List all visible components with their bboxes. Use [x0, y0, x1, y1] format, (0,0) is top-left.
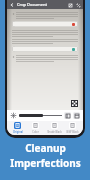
button[interactable]: B/W Black	[64, 122, 81, 134]
button[interactable]: Back	[9, 2, 15, 8]
staticText: B/W Black	[66, 130, 79, 134]
button[interactable]: Color	[27, 122, 44, 134]
button[interactable]: Brightness	[10, 112, 17, 119]
button[interactable]: Layers	[73, 112, 80, 119]
staticText: Color	[32, 130, 39, 134]
button[interactable]: Original	[9, 122, 26, 134]
button[interactable]	[12, 46, 78, 52]
staticText: Original	[13, 130, 23, 134]
button[interactable]: Expand	[75, 2, 81, 8]
staticText: Shade Black	[47, 130, 62, 134]
staticText: Imperfections	[10, 156, 81, 170]
button[interactable]: Brightness slider	[19, 112, 62, 119]
button[interactable]	[12, 21, 78, 27]
staticText: Crop Document	[17, 2, 48, 7]
button[interactable]: Crop	[64, 112, 71, 119]
button[interactable]: Shade Black	[46, 122, 63, 134]
staticText: Cleanup	[25, 141, 66, 155]
button[interactable]: Rotate	[67, 2, 73, 8]
